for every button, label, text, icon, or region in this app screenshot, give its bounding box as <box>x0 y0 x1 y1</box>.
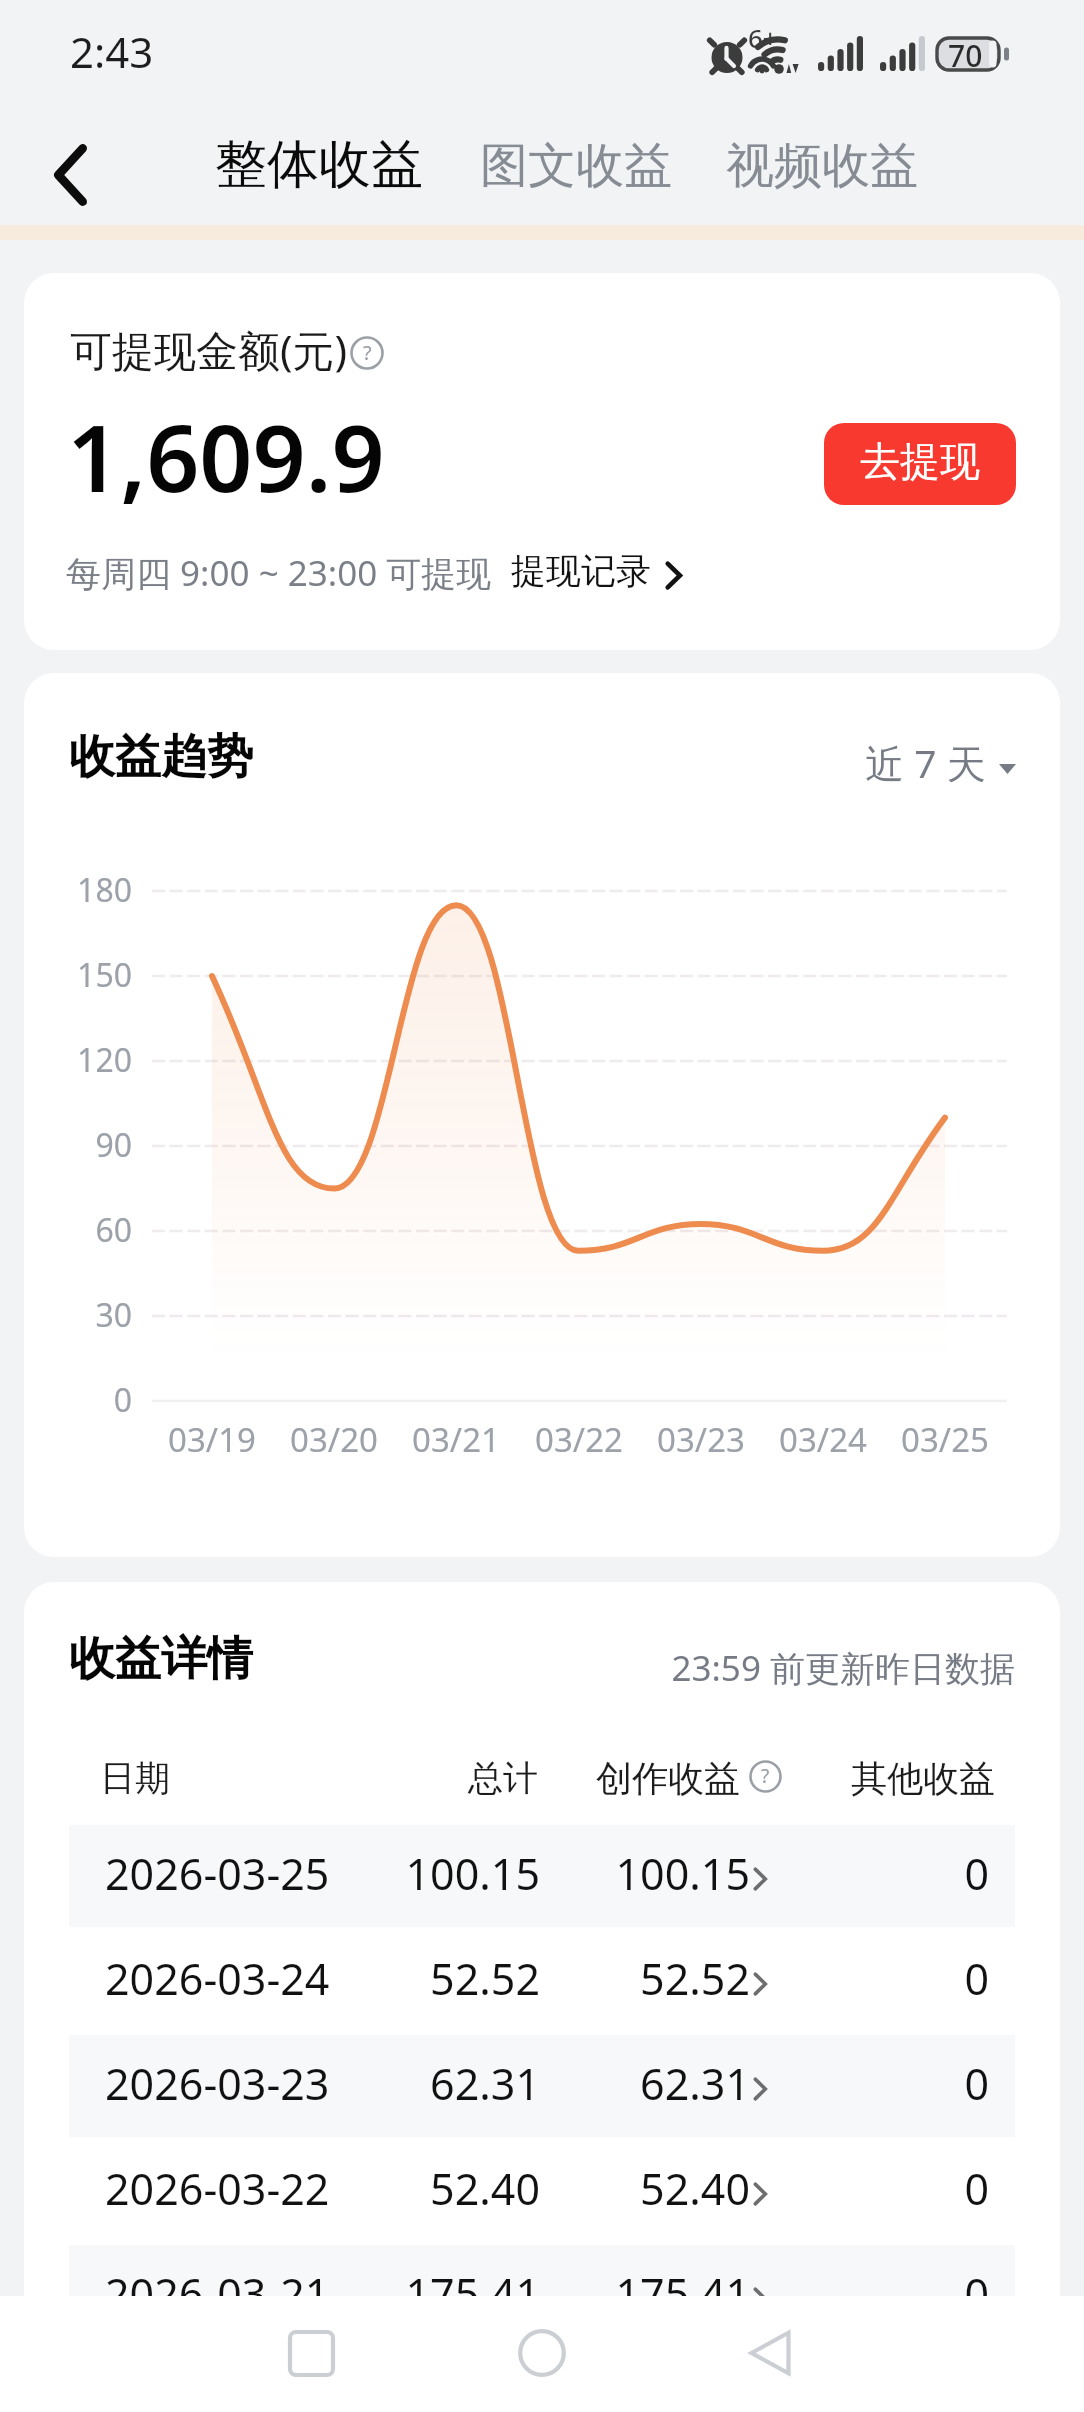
staticText: 175.41 <box>490 2264 750 2323</box>
staticText: 03/22 <box>509 1417 649 1462</box>
staticText: 03/20 <box>264 1417 404 1462</box>
staticText: 2026-03-21 <box>105 2264 330 2323</box>
staticText: 100.15 <box>490 1844 750 1903</box>
staticText: 图文收益 <box>480 136 672 196</box>
button[interactable] <box>69 2245 1015 2347</box>
staticText: 52.40 <box>490 2159 750 2218</box>
staticText: ? <box>363 339 372 366</box>
staticText: 2026-03-24 <box>105 1949 330 2008</box>
staticText: 总计 <box>338 1756 538 1800</box>
staticText: 视频收益 <box>726 136 918 196</box>
staticText: 30 <box>24 1293 132 1337</box>
staticText: 70 <box>948 35 983 71</box>
staticText: 收益趋势 <box>69 728 253 786</box>
staticText: 其他收益 <box>755 1756 995 1801</box>
button[interactable]: About creation earnings <box>749 1760 782 1793</box>
staticText: 0 <box>789 1949 989 2008</box>
staticText: 180 <box>24 868 132 912</box>
staticText: 03/21 <box>386 1417 526 1462</box>
button[interactable]: 近 7 天 <box>865 736 1016 789</box>
staticText: 52.52 <box>280 1949 540 2008</box>
staticText: 近 7 天 <box>865 736 986 789</box>
staticText: 6+ <box>748 20 778 55</box>
staticText: 175.41 <box>280 2264 540 2323</box>
staticText: 2026-03-22 <box>105 2159 330 2218</box>
button[interactable]: Home <box>487 2298 597 2408</box>
staticText: ? <box>761 1763 770 1789</box>
staticText: 2:43 <box>70 23 154 80</box>
button[interactable]: 图文收益 <box>480 136 672 196</box>
staticText: 1,609.9 <box>67 393 385 520</box>
staticText: 2026-03-23 <box>105 2054 330 2113</box>
button[interactable]: 提现记录 <box>511 549 680 593</box>
staticText: 创作收益 <box>480 1756 740 1801</box>
staticText: 每周四 9:00 ~ 23:00 可提现 <box>66 549 492 597</box>
button[interactable]: Back <box>30 135 110 215</box>
button[interactable] <box>69 1825 1015 1927</box>
button[interactable]: Recent apps <box>256 2298 366 2408</box>
staticText: 03/25 <box>875 1417 1015 1462</box>
button[interactable]: Back <box>715 2298 825 2408</box>
staticText: 0 <box>789 2159 989 2218</box>
staticText: 去提现 <box>860 436 980 486</box>
staticText: 0 <box>24 1378 132 1422</box>
staticText: 03/24 <box>753 1417 893 1462</box>
staticText: 52.40 <box>280 2159 540 2218</box>
staticText: 0 <box>789 2264 989 2323</box>
staticText: 62.31 <box>280 2054 540 2113</box>
button[interactable]: 整体收益 <box>215 132 423 198</box>
staticText: 可提现金额(元) <box>70 321 348 378</box>
staticText: 收益详情 <box>69 1630 253 1688</box>
button[interactable] <box>69 2035 1015 2137</box>
button[interactable]: 视频收益 <box>726 136 918 196</box>
staticText: 90 <box>24 1123 132 1167</box>
button[interactable] <box>69 1930 1015 2032</box>
staticText: 120 <box>24 1038 132 1082</box>
staticText: 0 <box>789 2054 989 2113</box>
staticText: 03/19 <box>142 1417 282 1462</box>
staticText: 62.31 <box>490 2054 750 2113</box>
button[interactable]: 去提现 <box>824 423 1016 505</box>
staticText: 2026-03-25 <box>105 1844 330 1903</box>
staticText: 0 <box>789 1844 989 1903</box>
staticText: 52.52 <box>490 1949 750 2008</box>
button[interactable]: About withdrawable amount <box>350 336 384 370</box>
staticText: 03/23 <box>631 1417 771 1462</box>
staticText: 日期 <box>100 1756 170 1800</box>
staticText: 150 <box>24 953 132 997</box>
staticText: 23:59 前更新昨日数据 <box>615 1644 1015 1692</box>
staticText: 提现记录 <box>511 549 651 593</box>
staticText: 100.15 <box>280 1844 540 1903</box>
button[interactable] <box>69 2140 1015 2242</box>
staticText: 60 <box>24 1208 132 1252</box>
staticText: 整体收益 <box>215 132 423 198</box>
